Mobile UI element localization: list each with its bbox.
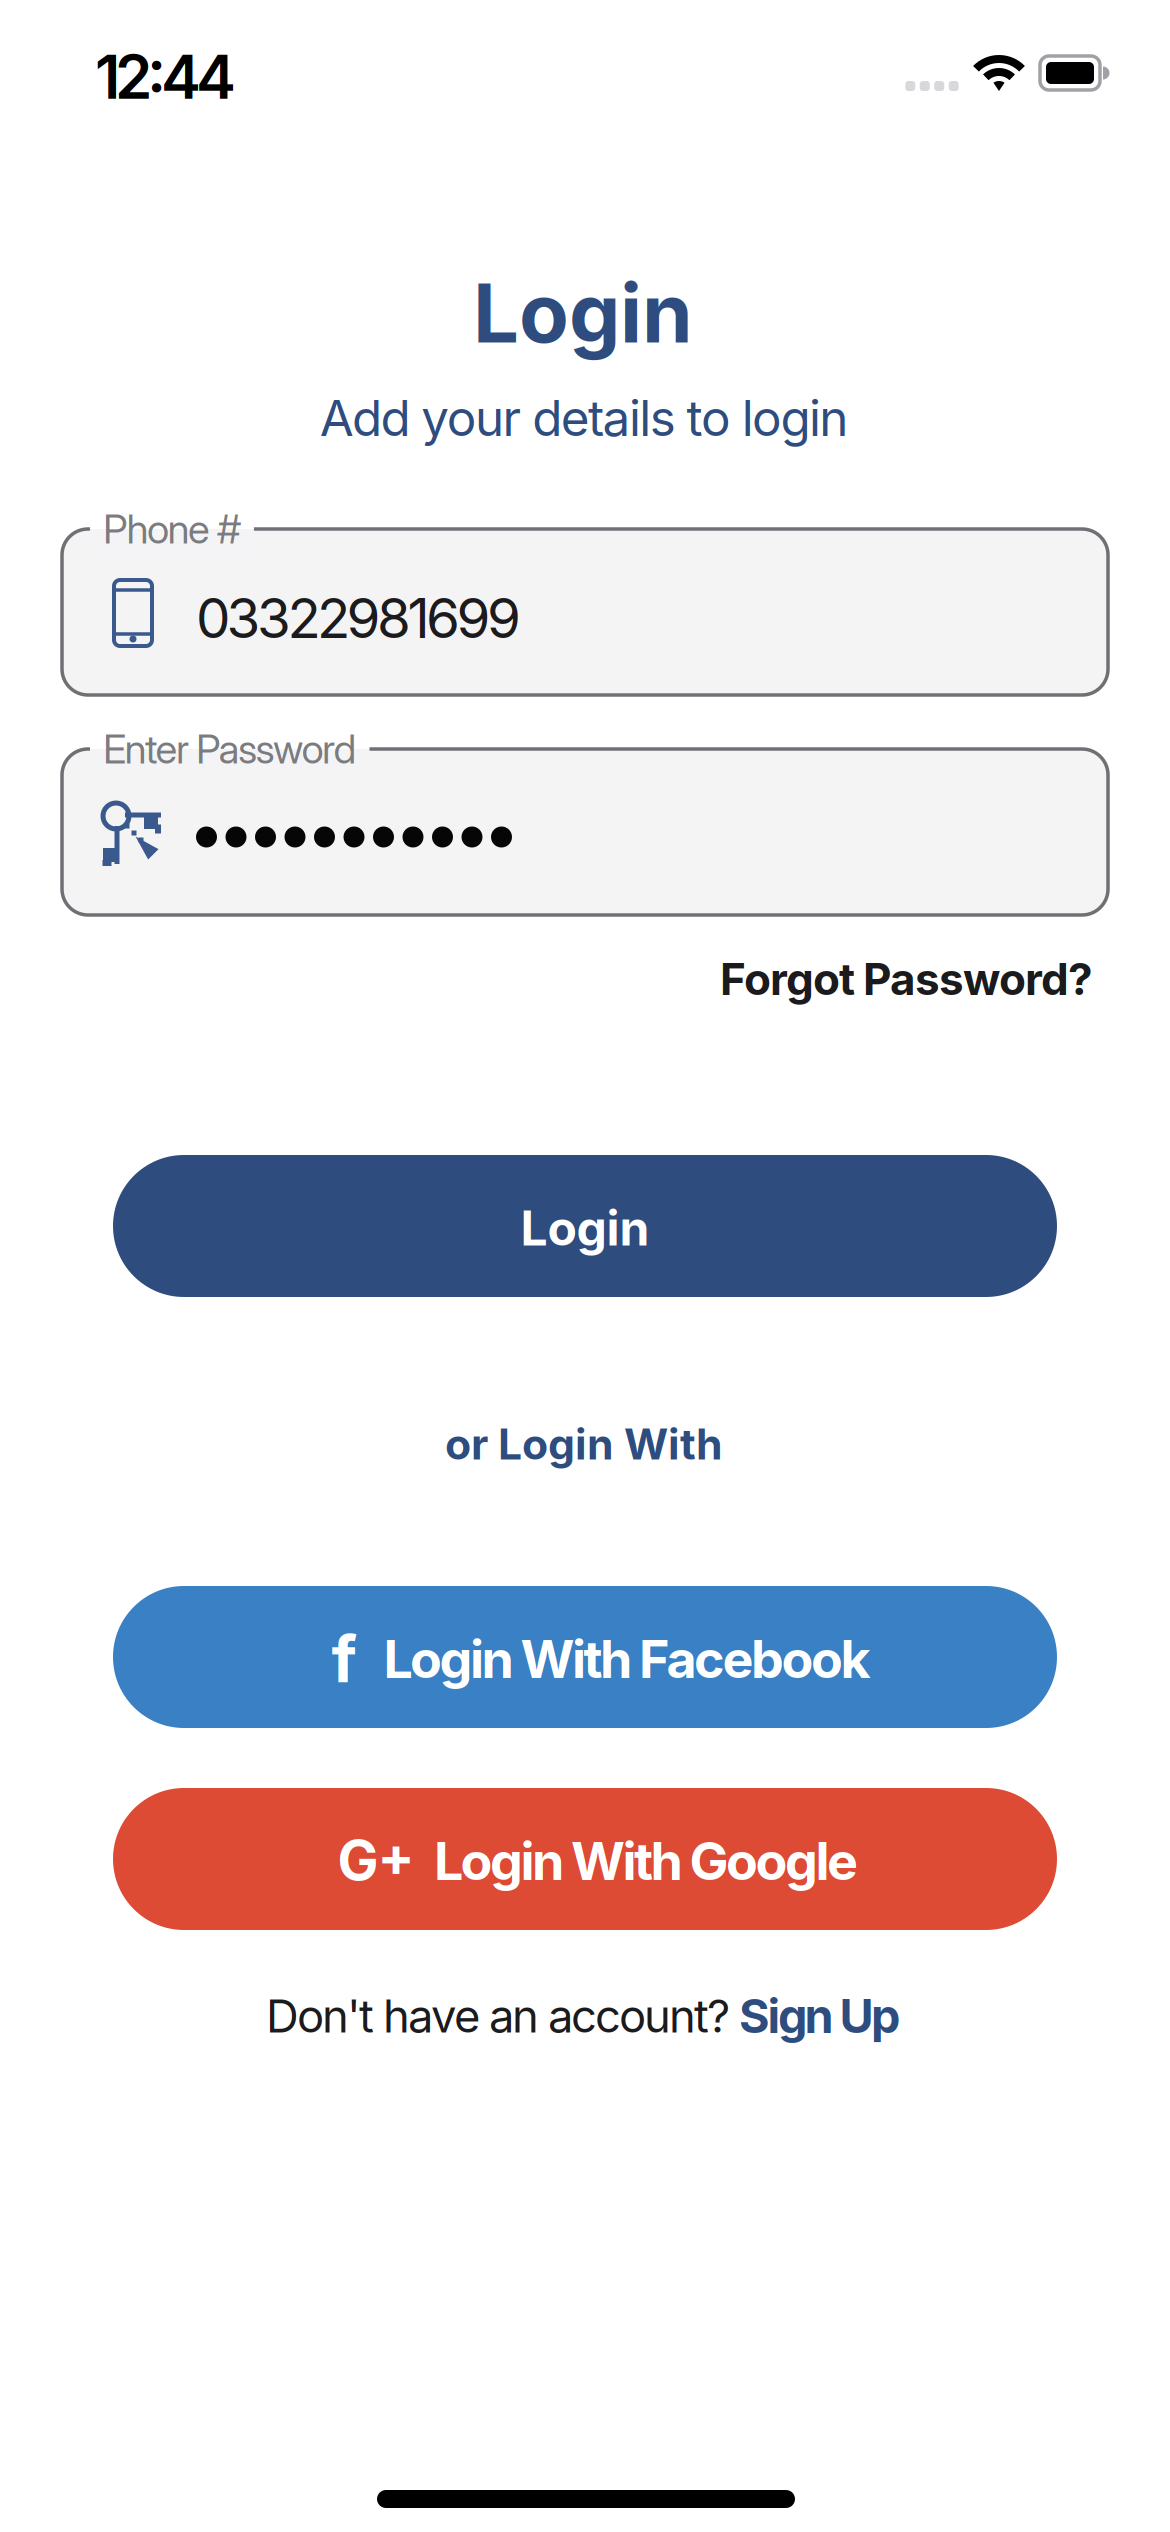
staticText: or Login With (445, 1419, 723, 1469)
staticText: Add your details to login (320, 389, 848, 447)
button[interactable]: f (113, 1586, 1057, 1728)
staticText: Forgot Password? (720, 953, 1093, 1005)
staticText: f (331, 1621, 356, 1697)
staticText: 03322981699 (196, 586, 521, 650)
button[interactable]: Login (113, 1155, 1057, 1297)
staticText: Enter Password (103, 725, 356, 773)
staticText: Login (473, 265, 693, 361)
staticText: Sign Up (739, 1988, 900, 2044)
staticText: 12:44 (95, 42, 236, 112)
button[interactable]: Forgot Password? (720, 953, 1093, 1005)
button[interactable]: G+ (113, 1788, 1057, 1930)
button[interactable]: Sign Up (739, 1988, 900, 2044)
staticText: Don't have an account? (266, 1989, 730, 2043)
staticText: Login With Google (434, 1830, 858, 1892)
staticText: Login (520, 1200, 649, 1256)
staticText: Login With Facebook (383, 1628, 870, 1690)
staticText: Phone # (103, 505, 241, 553)
staticText: G+ (337, 1828, 414, 1892)
